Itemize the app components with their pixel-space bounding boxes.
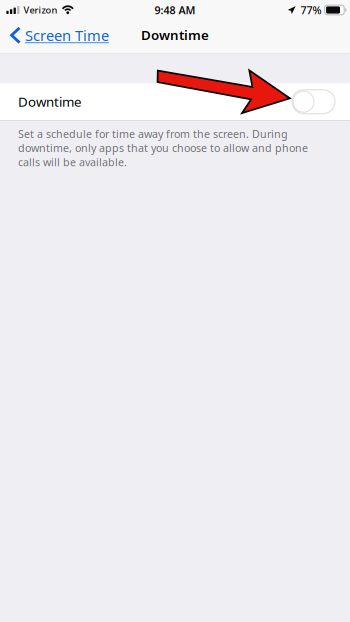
button[interactable]: Screen Time [0, 22, 115, 52]
staticText: Set a schedule for time away from the sc… [18, 127, 308, 169]
staticText: Downtime [141, 26, 209, 44]
staticText: Screen Time [25, 25, 109, 45]
staticText: 77% [301, 3, 322, 17]
staticText: Verizon [24, 4, 58, 16]
staticText: 9:48 AM [154, 3, 195, 17]
staticText: Downtime [18, 93, 82, 110]
button[interactable]: Downtime [0, 83, 350, 120]
